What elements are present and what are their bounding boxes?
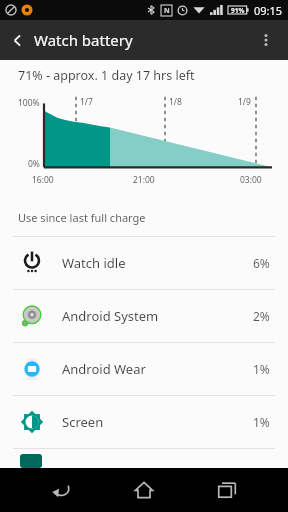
button[interactable]: More options xyxy=(248,22,284,58)
staticText: N xyxy=(164,6,170,16)
staticText: 91% xyxy=(231,6,245,15)
staticText: 09:15 xyxy=(254,3,283,18)
staticText: 16:00 xyxy=(32,174,54,186)
button[interactable]: Back xyxy=(0,23,34,57)
staticText: 1% xyxy=(253,414,270,430)
staticText: 1/8 xyxy=(169,96,182,108)
button[interactable]: Back xyxy=(39,468,83,512)
button[interactable] xyxy=(0,449,288,468)
staticText: 1/7 xyxy=(80,96,93,108)
button[interactable]: Screen xyxy=(0,396,288,448)
button[interactable]: Android System xyxy=(0,290,288,342)
staticText: 1/9 xyxy=(238,96,251,108)
staticText: Android Wear xyxy=(62,360,253,378)
button[interactable]: Watch idle xyxy=(0,237,288,289)
staticText: Android System xyxy=(62,307,253,325)
staticText: 100% xyxy=(18,97,40,109)
staticText: Screen xyxy=(62,413,253,431)
button[interactable]: Recent apps xyxy=(205,468,249,512)
button[interactable]: Home xyxy=(122,468,166,512)
staticText: 21:00 xyxy=(133,174,155,186)
staticText: 6% xyxy=(253,255,270,271)
button[interactable]: Android Wear xyxy=(0,343,288,395)
staticText: Watch battery xyxy=(34,30,248,50)
staticText: 2% xyxy=(253,308,270,324)
staticText: 71% - approx. 1 day 17 hrs left xyxy=(18,67,195,84)
staticText: Use since last full charge xyxy=(18,210,146,225)
staticText: 03:00 xyxy=(240,174,262,186)
staticText: 0% xyxy=(28,158,40,170)
staticText: Watch idle xyxy=(62,254,253,272)
staticText: 1% xyxy=(253,361,270,377)
